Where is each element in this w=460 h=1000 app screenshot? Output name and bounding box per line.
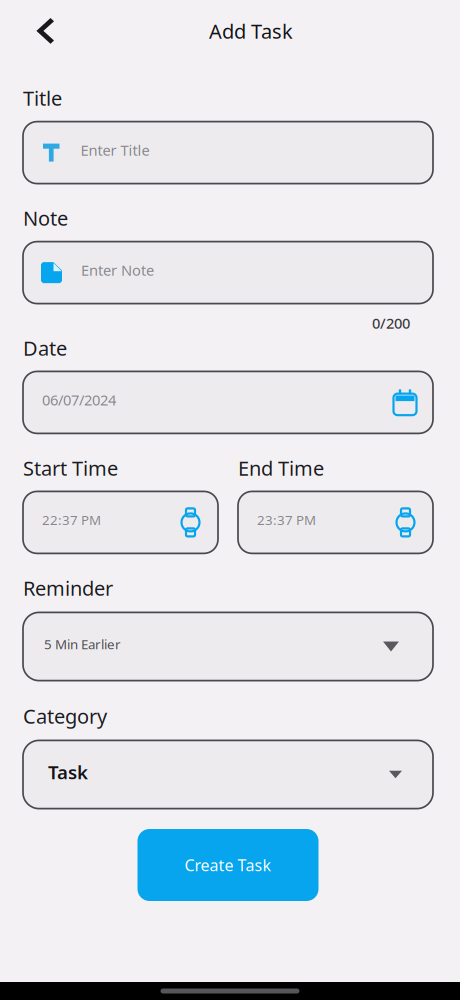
staticText: 22:37 PM — [42, 511, 101, 529]
button[interactable]: Enter Title — [23, 122, 433, 184]
staticText: Enter Note — [81, 260, 154, 280]
button[interactable]: Enter Note — [23, 242, 433, 304]
staticText: Note — [23, 205, 68, 231]
staticText: Task — [48, 760, 88, 784]
button[interactable]: Task — [23, 740, 433, 809]
button[interactable]: 23:37 PM — [238, 491, 433, 553]
staticText: Category — [23, 703, 107, 729]
staticText: Reminder — [23, 575, 113, 601]
staticText: Date — [23, 335, 67, 361]
staticText: End Time — [238, 455, 324, 481]
staticText: Enter Title — [80, 140, 149, 160]
button[interactable]: 22:37 PM — [23, 491, 218, 553]
staticText: 06/07/2024 — [42, 390, 116, 410]
staticText: 23:37 PM — [257, 511, 316, 529]
staticText: Start Time — [23, 455, 118, 481]
staticText: Title — [23, 85, 62, 111]
staticText: Create Task — [184, 854, 271, 876]
button[interactable]: Create Task — [137, 829, 318, 901]
button[interactable]: 06/07/2024 — [23, 371, 433, 433]
button[interactable]: 5 Min Earlier — [23, 612, 433, 681]
button[interactable]: Back — [21, 7, 69, 55]
staticText: 5 Min Earlier — [44, 635, 121, 653]
staticText: Add Task — [209, 18, 293, 44]
staticText: 0/200 — [372, 313, 410, 333]
